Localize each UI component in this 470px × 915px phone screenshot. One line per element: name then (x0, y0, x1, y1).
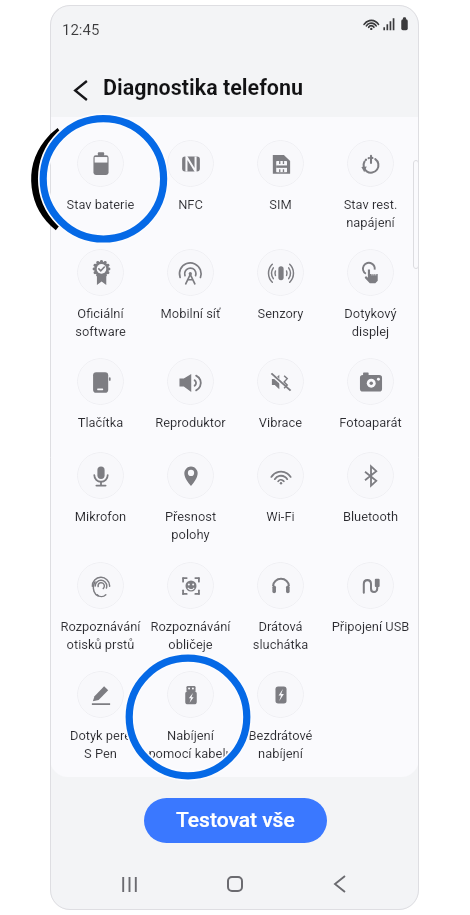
button[interactable]: Testovat vše (144, 798, 327, 843)
staticText: Reproduktor (145, 415, 236, 430)
staticText: Přesnost polohy (145, 509, 236, 542)
staticText: Vibrace (235, 415, 326, 430)
button[interactable]: Mikrofon (55, 447, 146, 539)
button[interactable]: Mobilní síť (145, 244, 236, 336)
button[interactable]: Back (314, 858, 366, 910)
staticText: Rozpoznávání obličeje (145, 619, 236, 652)
staticText: Drátová sluchátka (235, 619, 326, 652)
staticText: Bluetooth (325, 509, 416, 524)
staticText: Dotyk pere S Pen (55, 728, 146, 761)
staticText: Diagnostika telefonu (103, 75, 304, 100)
button[interactable]: Back (65, 74, 97, 106)
button[interactable]: Stav baterie (55, 135, 146, 227)
button[interactable]: Reproduktor (145, 353, 236, 445)
button[interactable]: Fotoaparát (325, 353, 416, 445)
button[interactable]: Rozpoznávání otisků prstů (55, 557, 146, 649)
staticText: Bezdrátové nabíjení (235, 728, 326, 761)
button[interactable]: Bezdrátové nabíjení (235, 666, 326, 758)
staticText: 12:45 (62, 21, 100, 39)
button[interactable]: Rozpoznávání obličeje (145, 557, 236, 649)
button[interactable]: Dotyk pere S Pen (55, 666, 146, 758)
staticText: Nabíjení pomocí kabelu (145, 728, 236, 761)
button[interactable]: SIM (235, 135, 326, 227)
staticText: Stav baterie (55, 197, 146, 212)
staticText: Tlačítka (55, 415, 146, 430)
staticText: Stav rest. napájení (325, 197, 416, 230)
button[interactable]: Připojení USB (325, 557, 416, 649)
staticText: Testovat vše (176, 808, 295, 833)
staticText: SIM (235, 197, 326, 212)
button[interactable]: Oficiální software (55, 244, 146, 336)
button[interactable]: Přesnost polohy (145, 447, 236, 539)
staticText: Senzory (235, 306, 326, 321)
button[interactable]: Home (209, 858, 261, 910)
staticText: Dotykový displej (325, 306, 416, 339)
staticText: Wi-Fi (235, 509, 326, 524)
button[interactable]: Stav rest. napájení (325, 135, 416, 227)
staticText: Mobilní síť (145, 306, 236, 321)
staticText: NFC (145, 197, 236, 212)
staticText: Oficiální software (55, 306, 146, 339)
button[interactable]: Dotykový displej (325, 244, 416, 336)
button[interactable]: Senzory (235, 244, 326, 336)
staticText: Mikrofon (55, 509, 146, 524)
staticText: Rozpoznávání otisků prstů (55, 619, 146, 652)
button[interactable]: Vibrace (235, 353, 326, 445)
button[interactable]: Nabíjení pomocí kabelu (145, 666, 236, 758)
button[interactable]: Wi-Fi (235, 447, 326, 539)
button[interactable]: Bluetooth (325, 447, 416, 539)
button[interactable]: NFC (145, 135, 236, 227)
button[interactable]: Recent apps (103, 858, 155, 910)
button[interactable]: Drátová sluchátka (235, 557, 326, 649)
button[interactable]: Tlačítka (55, 353, 146, 445)
staticText: Připojení USB (325, 619, 416, 634)
staticText: Fotoaparát (325, 415, 416, 430)
